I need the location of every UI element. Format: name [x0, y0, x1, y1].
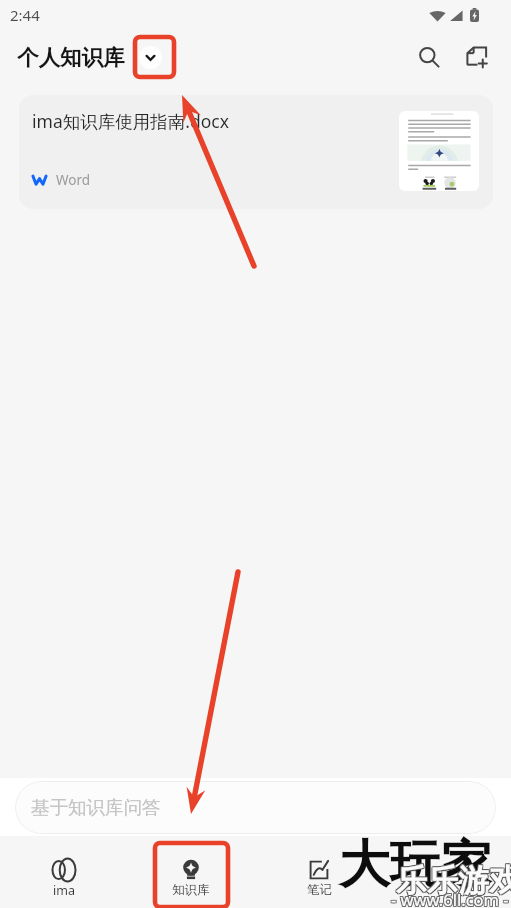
staticText: - www.6ll.com - — [390, 888, 508, 908]
staticText: 个人知识库 — [17, 44, 125, 71]
staticText: - www.6ll.com - — [391, 888, 509, 908]
staticText: - www.6ll.com - — [391, 887, 509, 908]
staticText: - www.6ll.com - — [391, 889, 509, 908]
staticText: Word — [56, 171, 91, 189]
button[interactable]: New document — [455, 35, 499, 79]
button[interactable]: ima — [0, 836, 127, 908]
button[interactable]: Search — [407, 35, 451, 79]
staticText: 笔记 — [307, 882, 332, 898]
staticText: 乐乐游戏 — [395, 860, 511, 899]
button[interactable]: 基于知识库问答 — [15, 781, 496, 834]
button[interactable]: ima知识库使用指南.docx — [19, 95, 493, 209]
staticText: 知识库 — [172, 882, 210, 898]
staticText: - www.6ll.com - — [392, 887, 510, 908]
staticText: 乐乐游戏 — [396, 861, 511, 900]
staticText: 基于知识库问答 — [31, 796, 161, 819]
staticText: - www.6ll.com - — [392, 888, 510, 908]
staticText: 乐乐游戏 — [397, 861, 511, 900]
staticText: ima知识库使用指南.docx — [32, 109, 229, 133]
staticText: 乐乐游戏 — [395, 861, 511, 900]
staticText: - www.6ll.com - — [392, 889, 510, 908]
staticText: 乐乐游戏 — [396, 860, 511, 899]
staticText: 大玩家 — [339, 833, 492, 897]
button[interactable]: 笔记 — [255, 836, 383, 908]
staticText: 乐乐游戏 — [395, 862, 511, 901]
staticText: ima — [53, 882, 75, 899]
staticText: 2:44 — [10, 5, 40, 25]
staticText: - www.6ll.com - — [390, 889, 508, 908]
staticText: 乐乐游戏 — [397, 862, 511, 901]
staticText: 乐乐游戏 — [396, 862, 511, 901]
staticText: - www.6ll.com - — [390, 887, 508, 908]
button[interactable]: 知识库 — [127, 836, 255, 908]
button[interactable]: Switch knowledge base — [139, 46, 162, 69]
staticText: 乐乐游戏 — [397, 860, 511, 899]
